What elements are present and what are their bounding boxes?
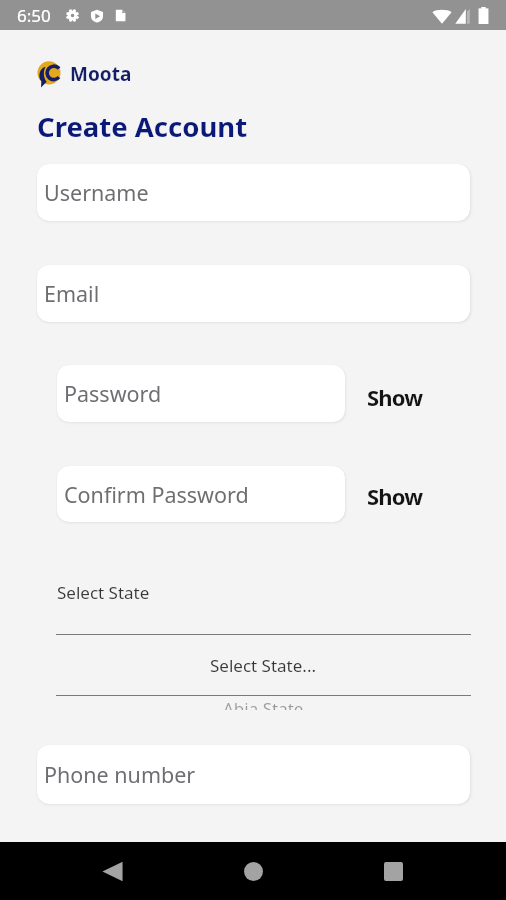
staticText: Password (64, 379, 162, 408)
button[interactable]: Back (83, 842, 141, 900)
button[interactable]: Email (37, 265, 470, 322)
button[interactable]: Username (37, 164, 470, 221)
button[interactable]: Password (57, 365, 345, 422)
button[interactable]: Confirm Password (57, 466, 345, 522)
button[interactable]: Home (224, 842, 282, 900)
button[interactable]: Show (365, 478, 425, 514)
button[interactable]: Show (365, 379, 425, 415)
staticText: Show (367, 481, 423, 511)
staticText: Select State (57, 581, 150, 604)
button[interactable]: Select State... (56, 634, 471, 696)
staticText: Select State... (210, 654, 317, 677)
staticText: Phone number (44, 760, 196, 789)
staticText: Confirm Password (64, 480, 249, 509)
staticText: Create Account (37, 108, 248, 145)
staticText: 6:50 (17, 4, 51, 27)
staticText: Moota (70, 61, 132, 87)
staticText: Abia State (223, 697, 304, 710)
button[interactable]: Recent apps (364, 842, 422, 900)
button[interactable]: Phone number (37, 745, 470, 804)
staticText: Show (367, 382, 423, 412)
staticText: Username (44, 178, 149, 207)
staticText: Email (44, 279, 100, 308)
